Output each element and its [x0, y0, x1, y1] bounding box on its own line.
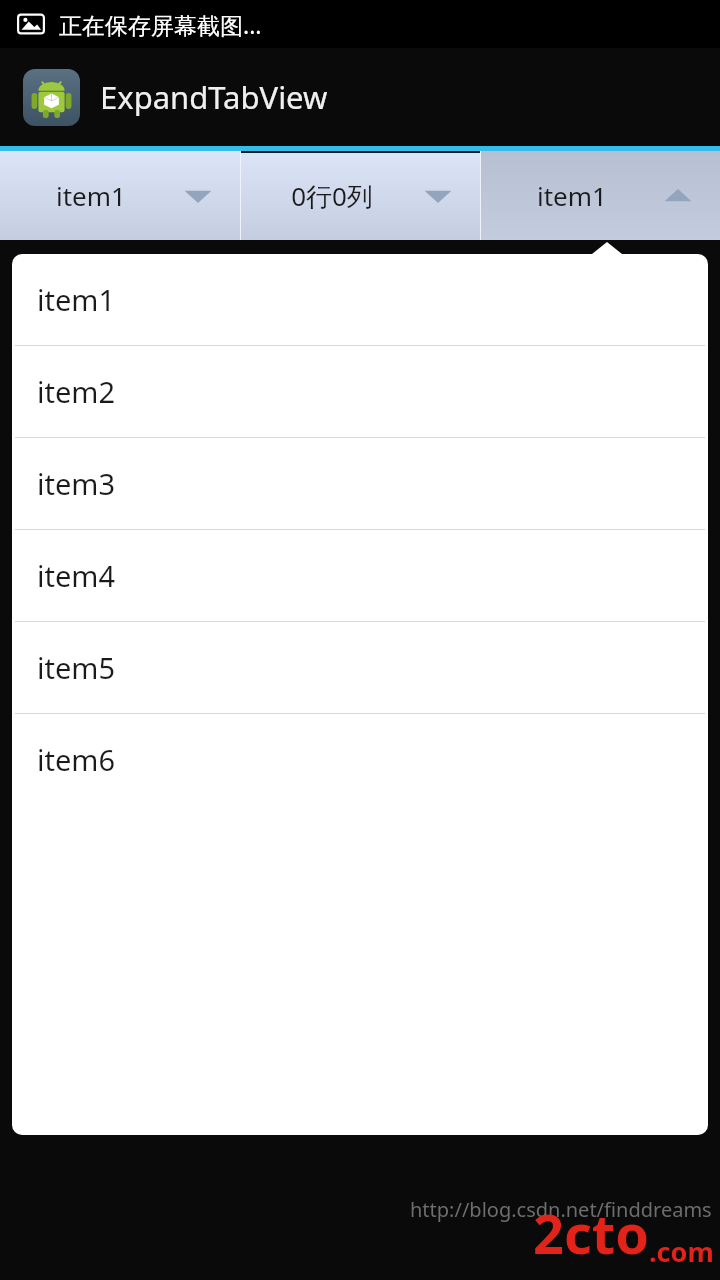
staticText: .com: [649, 1233, 714, 1270]
staticText: item1: [37, 280, 116, 319]
staticText: 0行0列: [291, 178, 373, 214]
button[interactable]: item6: [12, 714, 708, 805]
staticText: 2cto: [533, 1196, 649, 1270]
button[interactable]: item1: [481, 151, 720, 240]
button[interactable]: item1: [0, 151, 240, 240]
button[interactable]: item2: [12, 346, 708, 437]
staticText: ExpandTabView: [100, 76, 328, 118]
button[interactable]: 0行0列: [241, 151, 480, 240]
staticText: http://blog.csdn.net/finddreams: [410, 1196, 712, 1223]
staticText: item3: [37, 464, 116, 503]
button[interactable]: item3: [12, 438, 708, 529]
button[interactable]: item5: [12, 622, 708, 713]
other: Screenshot: [17, 12, 45, 36]
staticText: item6: [37, 740, 116, 779]
staticText: item1: [537, 178, 607, 213]
staticText: item2: [37, 372, 116, 411]
staticText: item4: [37, 556, 116, 595]
staticText: item5: [37, 648, 116, 687]
staticText: item1: [56, 178, 126, 213]
staticText: 正在保存屏幕截图...: [59, 9, 262, 40]
button[interactable]: item1: [12, 254, 708, 345]
button[interactable]: item4: [12, 530, 708, 621]
